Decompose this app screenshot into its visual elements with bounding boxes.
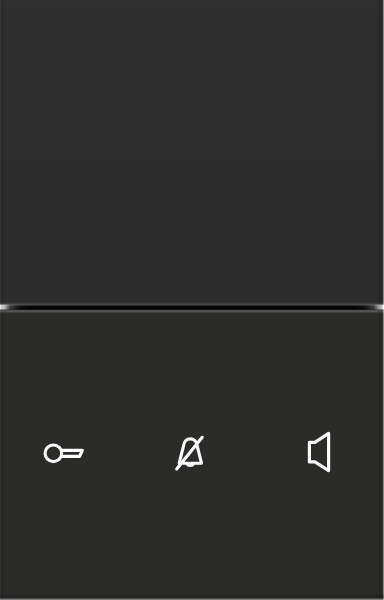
button[interactable]: Unlock <box>16 405 112 501</box>
button[interactable]: Mute notifications <box>144 405 240 501</box>
button[interactable]: Volume <box>272 405 368 501</box>
